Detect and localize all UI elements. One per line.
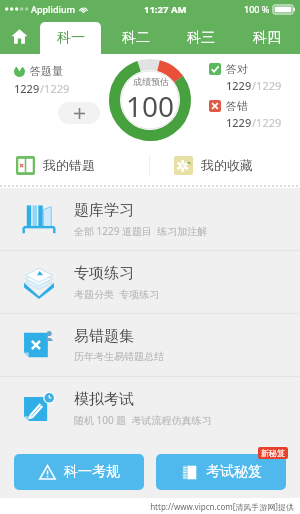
button[interactable]: 科一考规 <box>14 454 144 490</box>
staticText: 易错题集 <box>74 327 134 346</box>
staticText: 科三 <box>187 29 215 47</box>
button[interactable]: 考试秘笈 <box>156 454 286 490</box>
staticText: 我的收藏 <box>201 157 253 173</box>
staticText: 11:27 AM <box>144 3 187 16</box>
staticText: 历年考生易错题总结 <box>74 350 164 363</box>
staticText: 模拟考试 <box>74 390 134 409</box>
button[interactable]: Add <box>58 102 100 124</box>
staticText: 考试秘笈 <box>206 463 262 481</box>
button[interactable]: Home <box>0 18 38 54</box>
button[interactable]: 专项练习 <box>0 251 300 313</box>
staticText: 答题量 <box>30 64 63 78</box>
button[interactable]: 我的错题 <box>0 146 149 184</box>
staticText: /1229 <box>252 78 282 93</box>
button[interactable]: 科四 <box>236 22 298 54</box>
staticText: 考题分类 专项练习 <box>74 287 160 301</box>
staticText: 科二 <box>122 29 150 47</box>
staticText: /1229 <box>40 81 70 96</box>
staticText: 随机 100 题 考试流程仿真练习 <box>74 413 212 427</box>
staticText: 专项练习 <box>74 264 134 283</box>
staticText: 1229 <box>14 81 40 96</box>
button[interactable]: 模拟考试 <box>0 377 300 439</box>
button[interactable]: 科一 <box>40 22 101 54</box>
staticText: 全部 1229 道题目 练习加注解 <box>74 224 208 238</box>
button[interactable]: 题库学习 <box>0 188 300 250</box>
staticText: 100 <box>126 87 175 125</box>
staticText: 题库学习 <box>74 201 134 220</box>
staticText: 新秘笈 <box>261 448 285 458</box>
staticText: 成绩预估 <box>133 76 169 87</box>
button[interactable]: 我的收藏 <box>150 146 300 184</box>
button[interactable]: 科三 <box>170 22 232 54</box>
button[interactable]: 易错题集 <box>0 314 300 376</box>
staticText: /1229 <box>252 115 282 130</box>
staticText: 科一 <box>57 29 85 47</box>
staticText: 科一考规 <box>64 463 120 481</box>
staticText: 1229 <box>226 115 252 130</box>
staticText: http://www.vipcn.com[清风手游网]提供 <box>150 501 294 512</box>
staticText: Applidium <box>31 3 76 15</box>
staticText: 我的错题 <box>43 157 95 173</box>
button[interactable]: 科二 <box>105 22 166 54</box>
staticText: 科四 <box>253 29 281 47</box>
staticText: 答错 <box>226 99 248 113</box>
staticText: 100 % <box>244 3 270 15</box>
staticText: 答对 <box>226 62 248 76</box>
staticText: 1229 <box>226 78 252 93</box>
